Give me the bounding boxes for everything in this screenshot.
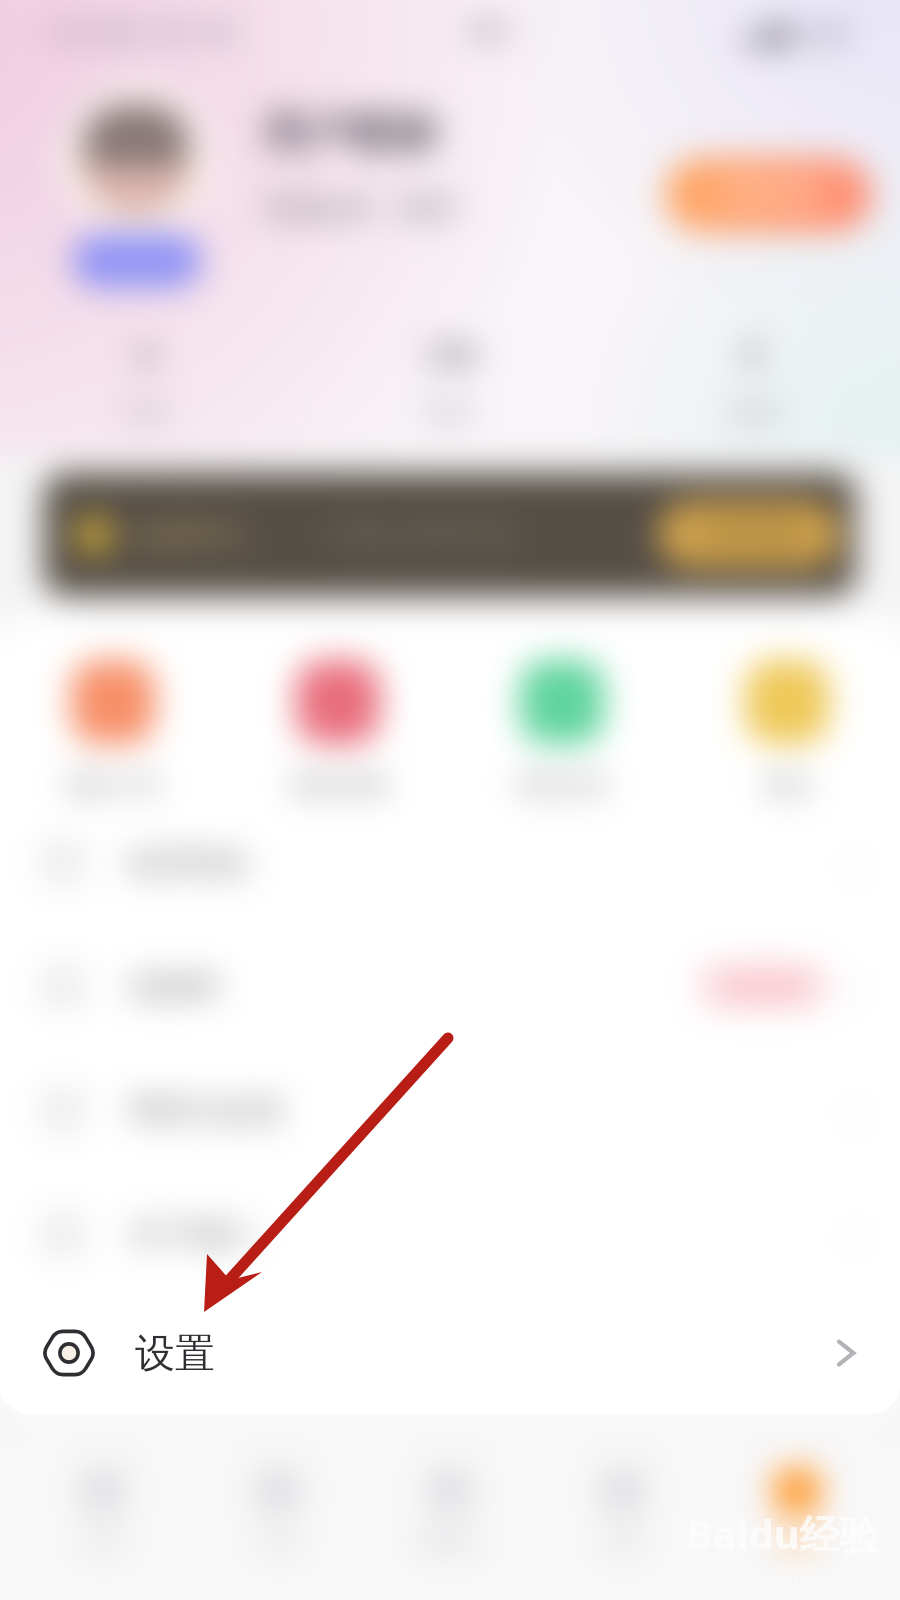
- button[interactable]: 设置: [0, 1296, 900, 1414]
- staticText: 签到: [398, 189, 458, 227]
- other: Open settings: [830, 1338, 860, 1368]
- staticText: 我的: [775, 1528, 819, 1556]
- button[interactable]: 收货地址: [0, 800, 900, 924]
- button[interactable]: 我的收藏: [259, 660, 417, 800]
- staticText: 用户昵称: [262, 106, 438, 161]
- button[interactable]: 优惠券: [0, 924, 900, 1048]
- staticText: 会员中心: [136, 517, 248, 552]
- button[interactable]: 帮助与反馈: [0, 1048, 900, 1172]
- staticText: 3张可用: [723, 971, 802, 1001]
- staticText: ›: [850, 1329, 862, 1381]
- staticText: 14:32 周三 5月12日: [44, 16, 238, 46]
- button[interactable]: 我的订单: [34, 660, 192, 800]
- button[interactable]: 钱包: [708, 660, 866, 800]
- staticText: 等级LV5: [262, 187, 374, 228]
- staticText: Baidu经验: [686, 1506, 880, 1561]
- button[interactable]: 我的: [727, 1442, 867, 1556]
- button[interactable]: 消息: [553, 1442, 693, 1556]
- button[interactable]: 首页: [33, 1442, 173, 1556]
- button[interactable]: 关于我们: [0, 1172, 900, 1296]
- button[interactable]: 9: [663, 334, 843, 427]
- staticText: 关于我们: [128, 1215, 252, 1254]
- staticText: 128: [424, 334, 476, 375]
- staticText: ▂▄▆ ◔ ▬▏: [740, 16, 860, 46]
- button[interactable]: 128: [360, 334, 540, 427]
- staticText: 设置: [128, 1336, 190, 1375]
- staticText: 立即开通: [699, 519, 799, 550]
- button[interactable]: 购物车: [380, 1442, 520, 1556]
- button[interactable]: 分类: [207, 1442, 347, 1556]
- button[interactable]: 浏览历史: [483, 660, 641, 800]
- button[interactable]: 6: [57, 334, 237, 427]
- button[interactable]: 立即登录: [665, 158, 872, 232]
- button[interactable]: 设置: [0, 1292, 900, 1414]
- staticText: 浏览历史: [514, 770, 610, 800]
- button[interactable]: 会员中心: [44, 473, 856, 596]
- button[interactable]: 立即开通: [658, 501, 840, 568]
- staticText: 设置: [135, 1328, 215, 1378]
- staticText: 收货地址: [128, 843, 252, 882]
- staticText: 优惠券: [128, 967, 221, 1006]
- staticText: 立即登录: [715, 178, 823, 212]
- staticText: 帮助与反馈: [128, 1091, 283, 1130]
